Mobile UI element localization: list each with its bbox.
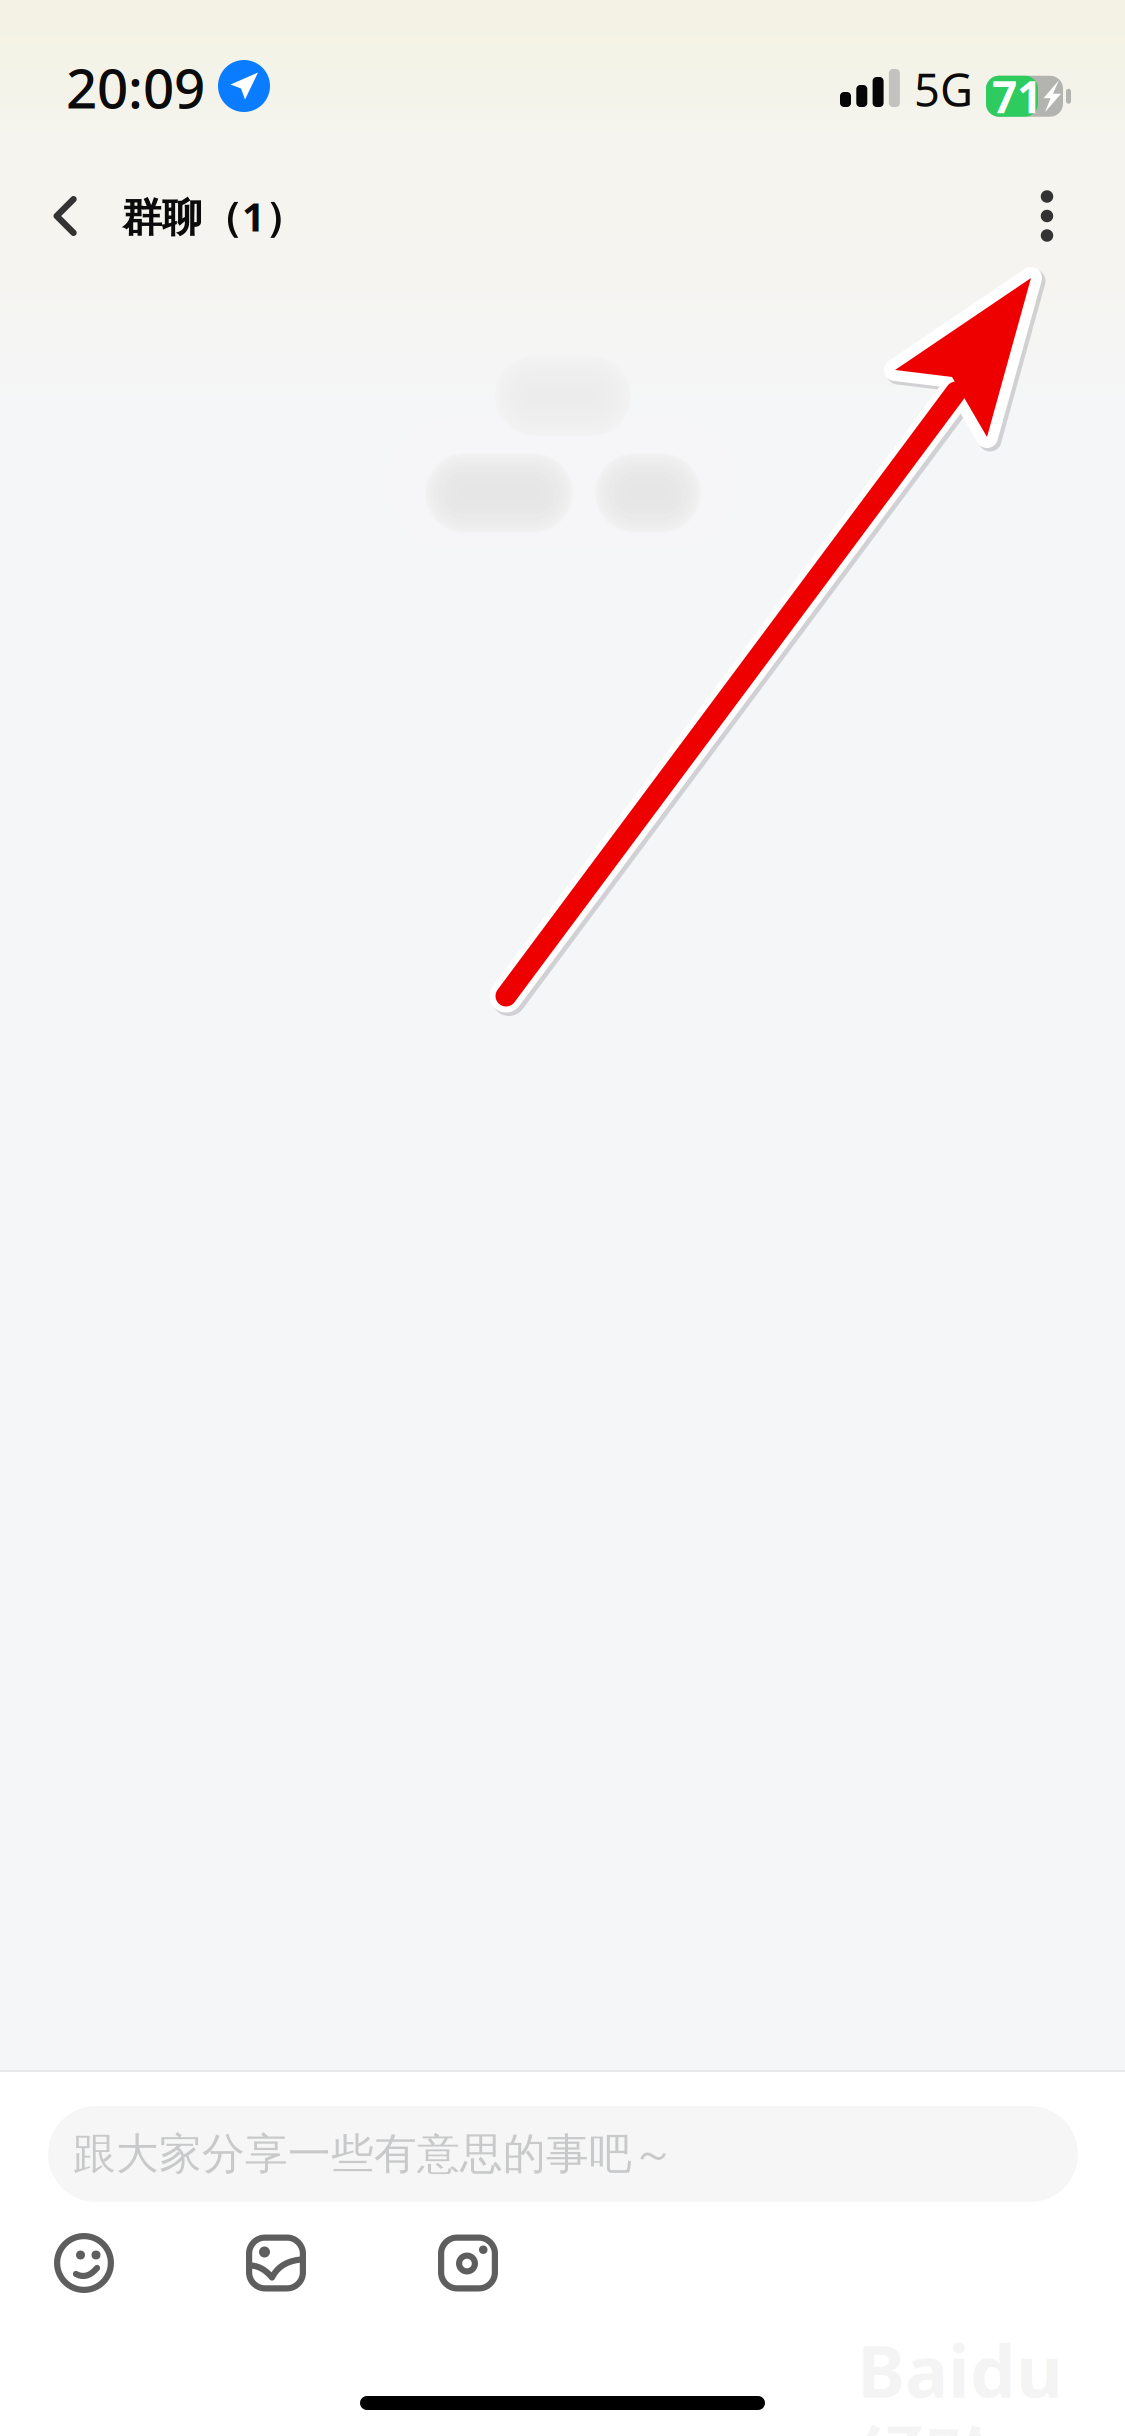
button[interactable]: 更多 bbox=[993, 162, 1101, 270]
staticText: Baidu 经验 bbox=[857, 2322, 1063, 2436]
staticText: 跟大家分享一些有意思的事吧～ bbox=[73, 2128, 675, 2180]
button[interactable]: 图片 bbox=[246, 2233, 306, 2293]
staticText: 71 bbox=[992, 67, 1042, 125]
button[interactable]: 表情 bbox=[54, 2233, 114, 2293]
button[interactable]: 返回 bbox=[21, 162, 109, 270]
staticText: 5G bbox=[914, 59, 973, 119]
button[interactable]: 群聊（1） bbox=[122, 162, 322, 270]
button[interactable]: 跟大家分享一些有意思的事吧～ bbox=[48, 2106, 1078, 2202]
staticText: 群聊（1） bbox=[122, 189, 305, 242]
button[interactable]: 拍摄 bbox=[438, 2233, 498, 2293]
staticText: 20:09 bbox=[66, 51, 205, 124]
